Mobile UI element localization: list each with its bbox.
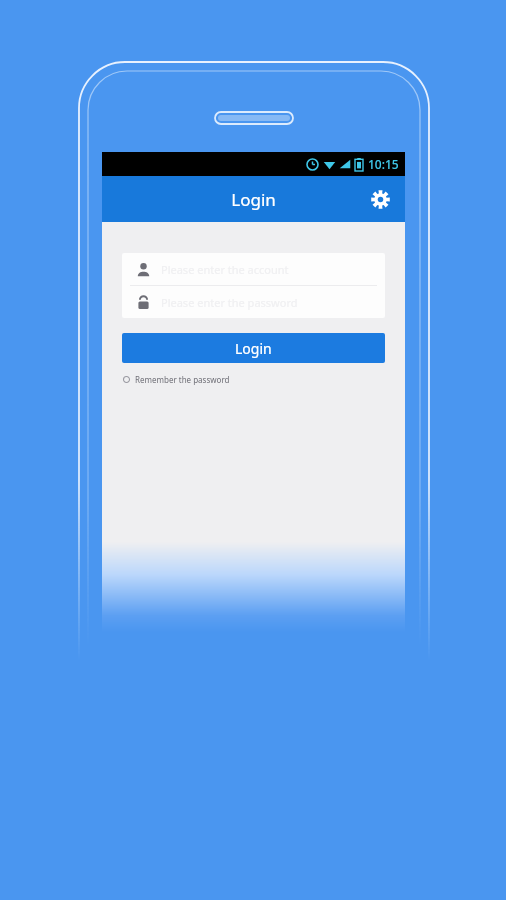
staticText: Login: [231, 188, 276, 211]
button[interactable]: Login: [122, 333, 385, 363]
button[interactable]: Settings: [367, 186, 393, 212]
staticText: Please enter the password: [161, 295, 298, 310]
staticText: Please enter the account: [161, 262, 289, 277]
button[interactable]: Please enter the account: [122, 253, 385, 285]
staticText: Remember the password: [135, 374, 230, 385]
staticText: Login: [235, 339, 272, 358]
staticText: 10:15: [368, 156, 399, 172]
button[interactable]: Please enter the password: [122, 286, 385, 318]
button[interactable]: Remember the password: [123, 374, 230, 385]
